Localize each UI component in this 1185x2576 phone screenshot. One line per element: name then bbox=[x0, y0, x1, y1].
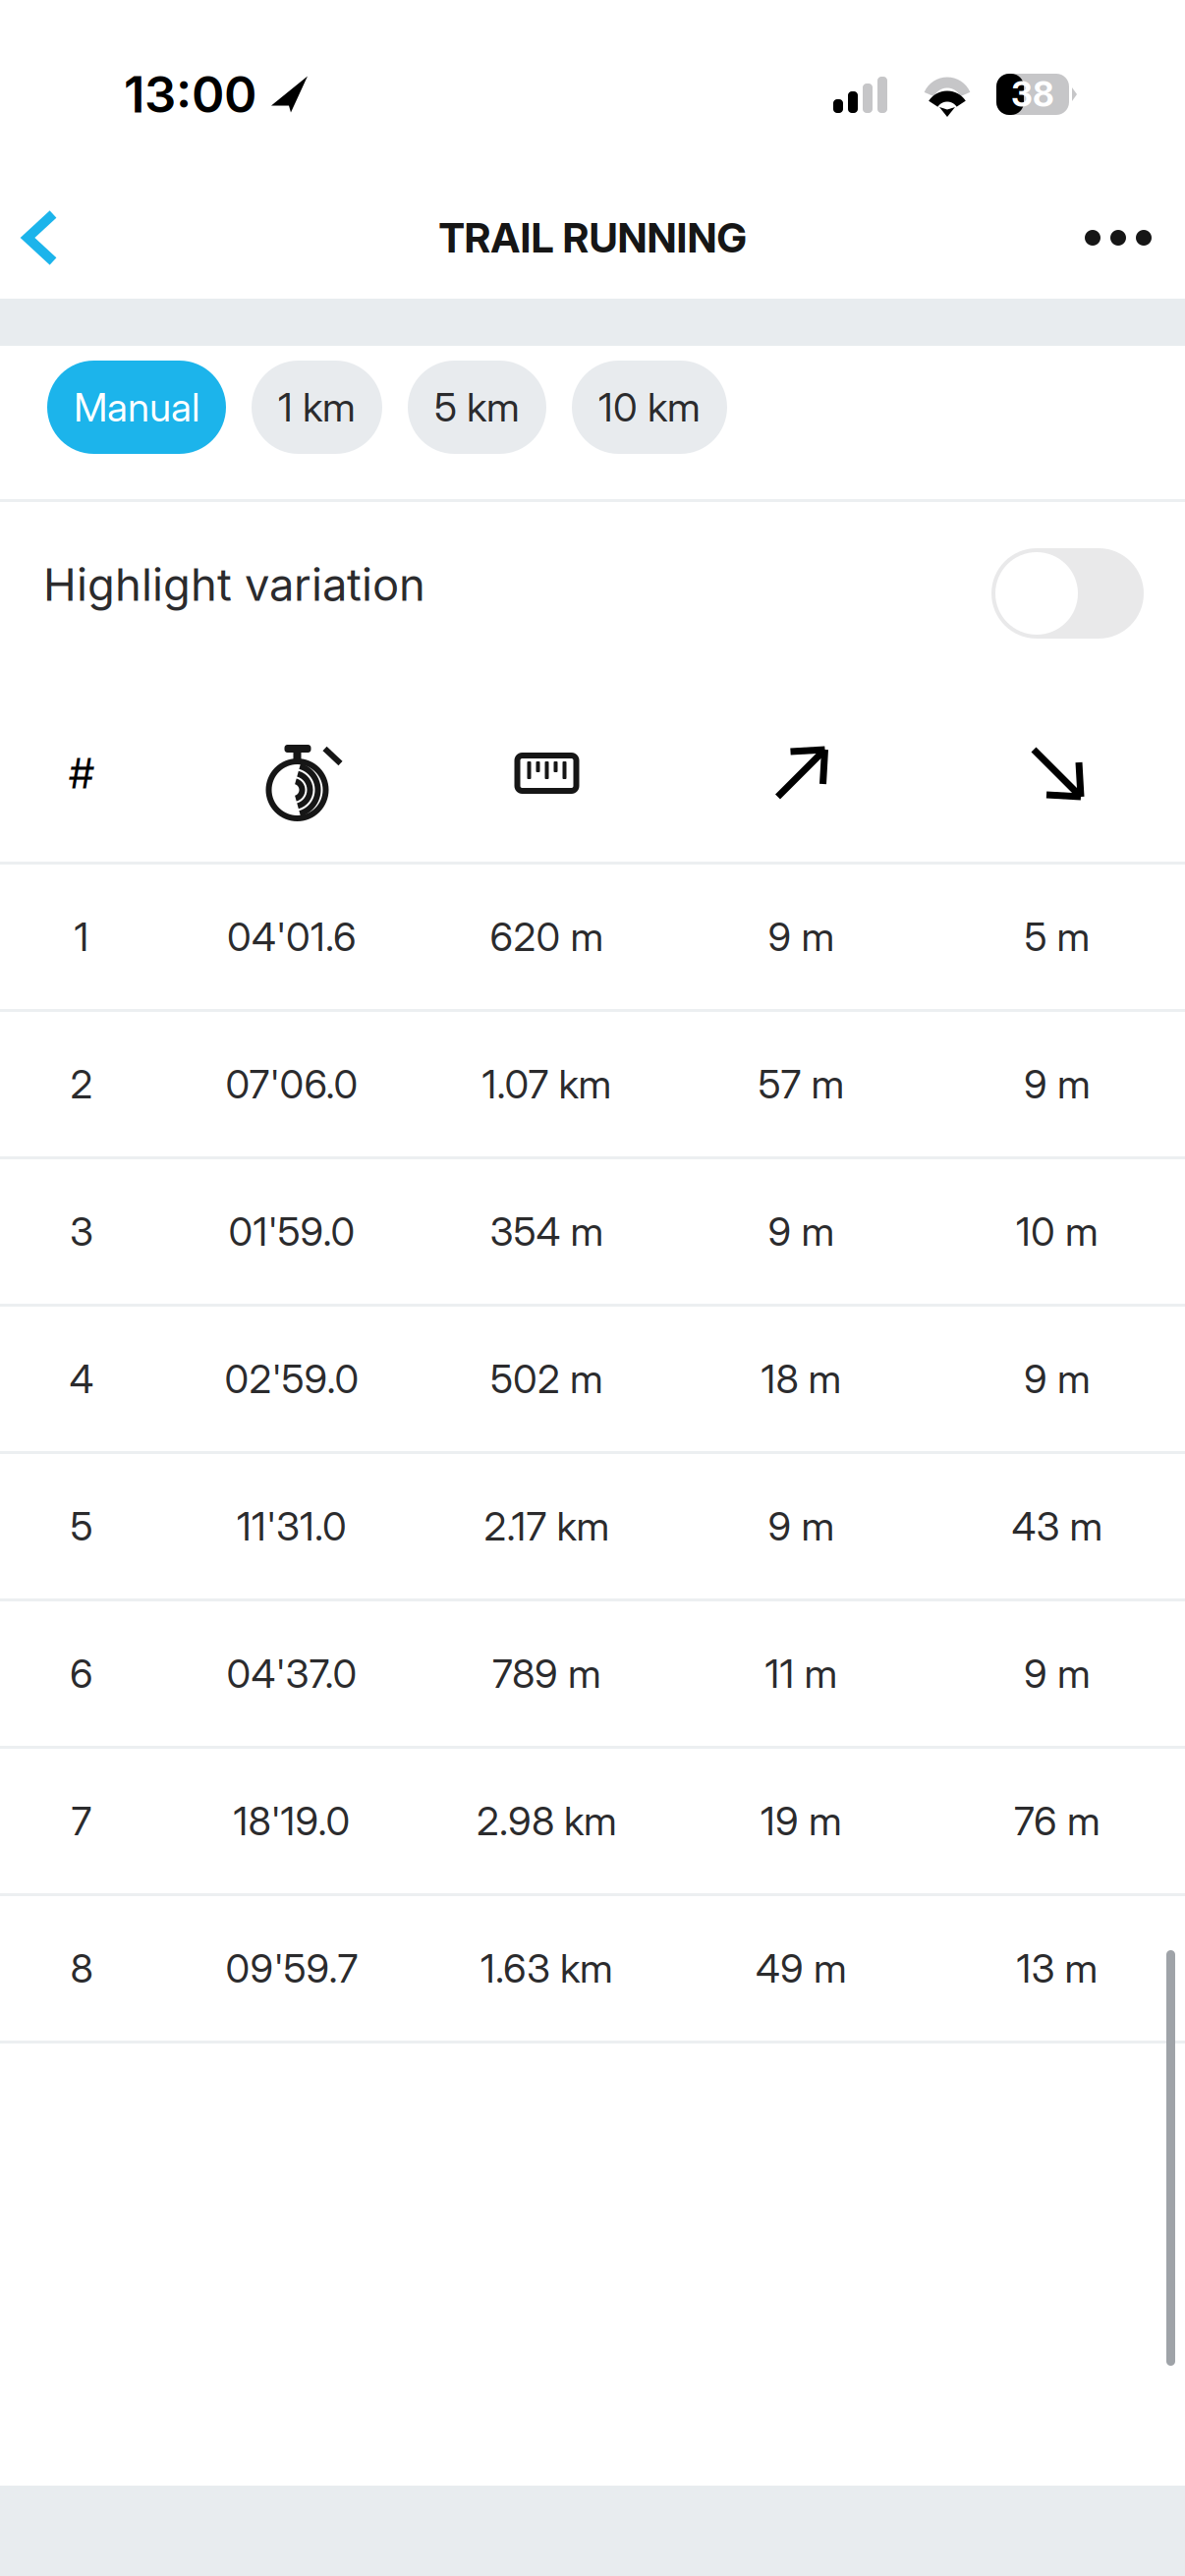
button[interactable]: 5 km bbox=[408, 361, 546, 454]
staticText: 502 m bbox=[490, 1355, 603, 1403]
staticText: 354 m bbox=[490, 1208, 604, 1255]
button[interactable]: Back bbox=[0, 177, 78, 299]
staticText: 9 m bbox=[1024, 1060, 1091, 1108]
staticText: 10 m bbox=[1016, 1208, 1099, 1255]
staticText: 02'59.0 bbox=[225, 1355, 359, 1403]
staticText: 04'37.0 bbox=[226, 1650, 357, 1697]
staticText: 13 m bbox=[1016, 1945, 1098, 1992]
staticText: 8 bbox=[70, 1945, 93, 1992]
staticText: 04'01.6 bbox=[227, 913, 357, 961]
staticText: 11 m bbox=[765, 1650, 838, 1697]
button[interactable]: Highlight variation bbox=[0, 502, 1185, 685]
button[interactable]: 10 km bbox=[572, 361, 727, 454]
staticText: 38 bbox=[1011, 74, 1054, 115]
button[interactable]: More options bbox=[1045, 177, 1185, 299]
staticText: 3 bbox=[70, 1208, 93, 1255]
staticText: TRAIL RUNNING bbox=[439, 213, 746, 262]
staticText: 5 km bbox=[434, 383, 520, 431]
staticText: 7 bbox=[71, 1797, 92, 1845]
staticText: 09'59.7 bbox=[226, 1945, 358, 1992]
staticText: 1.63 km bbox=[480, 1945, 613, 1992]
staticText: Highlight variation bbox=[43, 558, 425, 612]
staticText: 01'59.0 bbox=[228, 1208, 355, 1255]
staticText: 1.07 km bbox=[482, 1060, 612, 1108]
staticText: 5 bbox=[70, 1502, 93, 1550]
staticText: 19 m bbox=[761, 1797, 842, 1845]
staticText: # bbox=[68, 748, 95, 799]
staticText: Manual bbox=[74, 383, 199, 431]
staticText: 6 bbox=[70, 1650, 93, 1697]
staticText: 11'31.0 bbox=[237, 1502, 347, 1550]
staticText: 13:00 bbox=[124, 64, 256, 124]
staticText: 4 bbox=[69, 1355, 94, 1403]
staticText: 1 km bbox=[278, 383, 356, 431]
staticText: 2 bbox=[70, 1060, 93, 1108]
staticText: 07'06.0 bbox=[226, 1060, 358, 1108]
staticText: 18 m bbox=[761, 1355, 842, 1403]
staticText: 9 m bbox=[1024, 1650, 1091, 1697]
staticText: 9 m bbox=[768, 1502, 835, 1550]
staticText: 620 m bbox=[490, 913, 604, 961]
staticText: 43 m bbox=[1012, 1502, 1103, 1550]
staticText: 49 m bbox=[756, 1945, 847, 1992]
button[interactable]: Manual bbox=[47, 361, 226, 454]
staticText: 57 m bbox=[758, 1060, 845, 1108]
staticText: 5 m bbox=[1024, 913, 1090, 961]
staticText: 1 bbox=[74, 913, 89, 961]
staticText: 9 m bbox=[768, 1208, 835, 1255]
staticText: 9 m bbox=[768, 913, 835, 961]
staticText: 18'19.0 bbox=[233, 1797, 350, 1845]
staticText: 789 m bbox=[492, 1650, 601, 1697]
staticText: 76 m bbox=[1014, 1797, 1100, 1845]
staticText: 2.98 km bbox=[477, 1797, 617, 1845]
button[interactable]: 1 km bbox=[252, 361, 382, 454]
staticText: 2.17 km bbox=[484, 1502, 610, 1550]
staticText: 10 km bbox=[598, 383, 701, 431]
staticText: 9 m bbox=[1024, 1355, 1091, 1403]
